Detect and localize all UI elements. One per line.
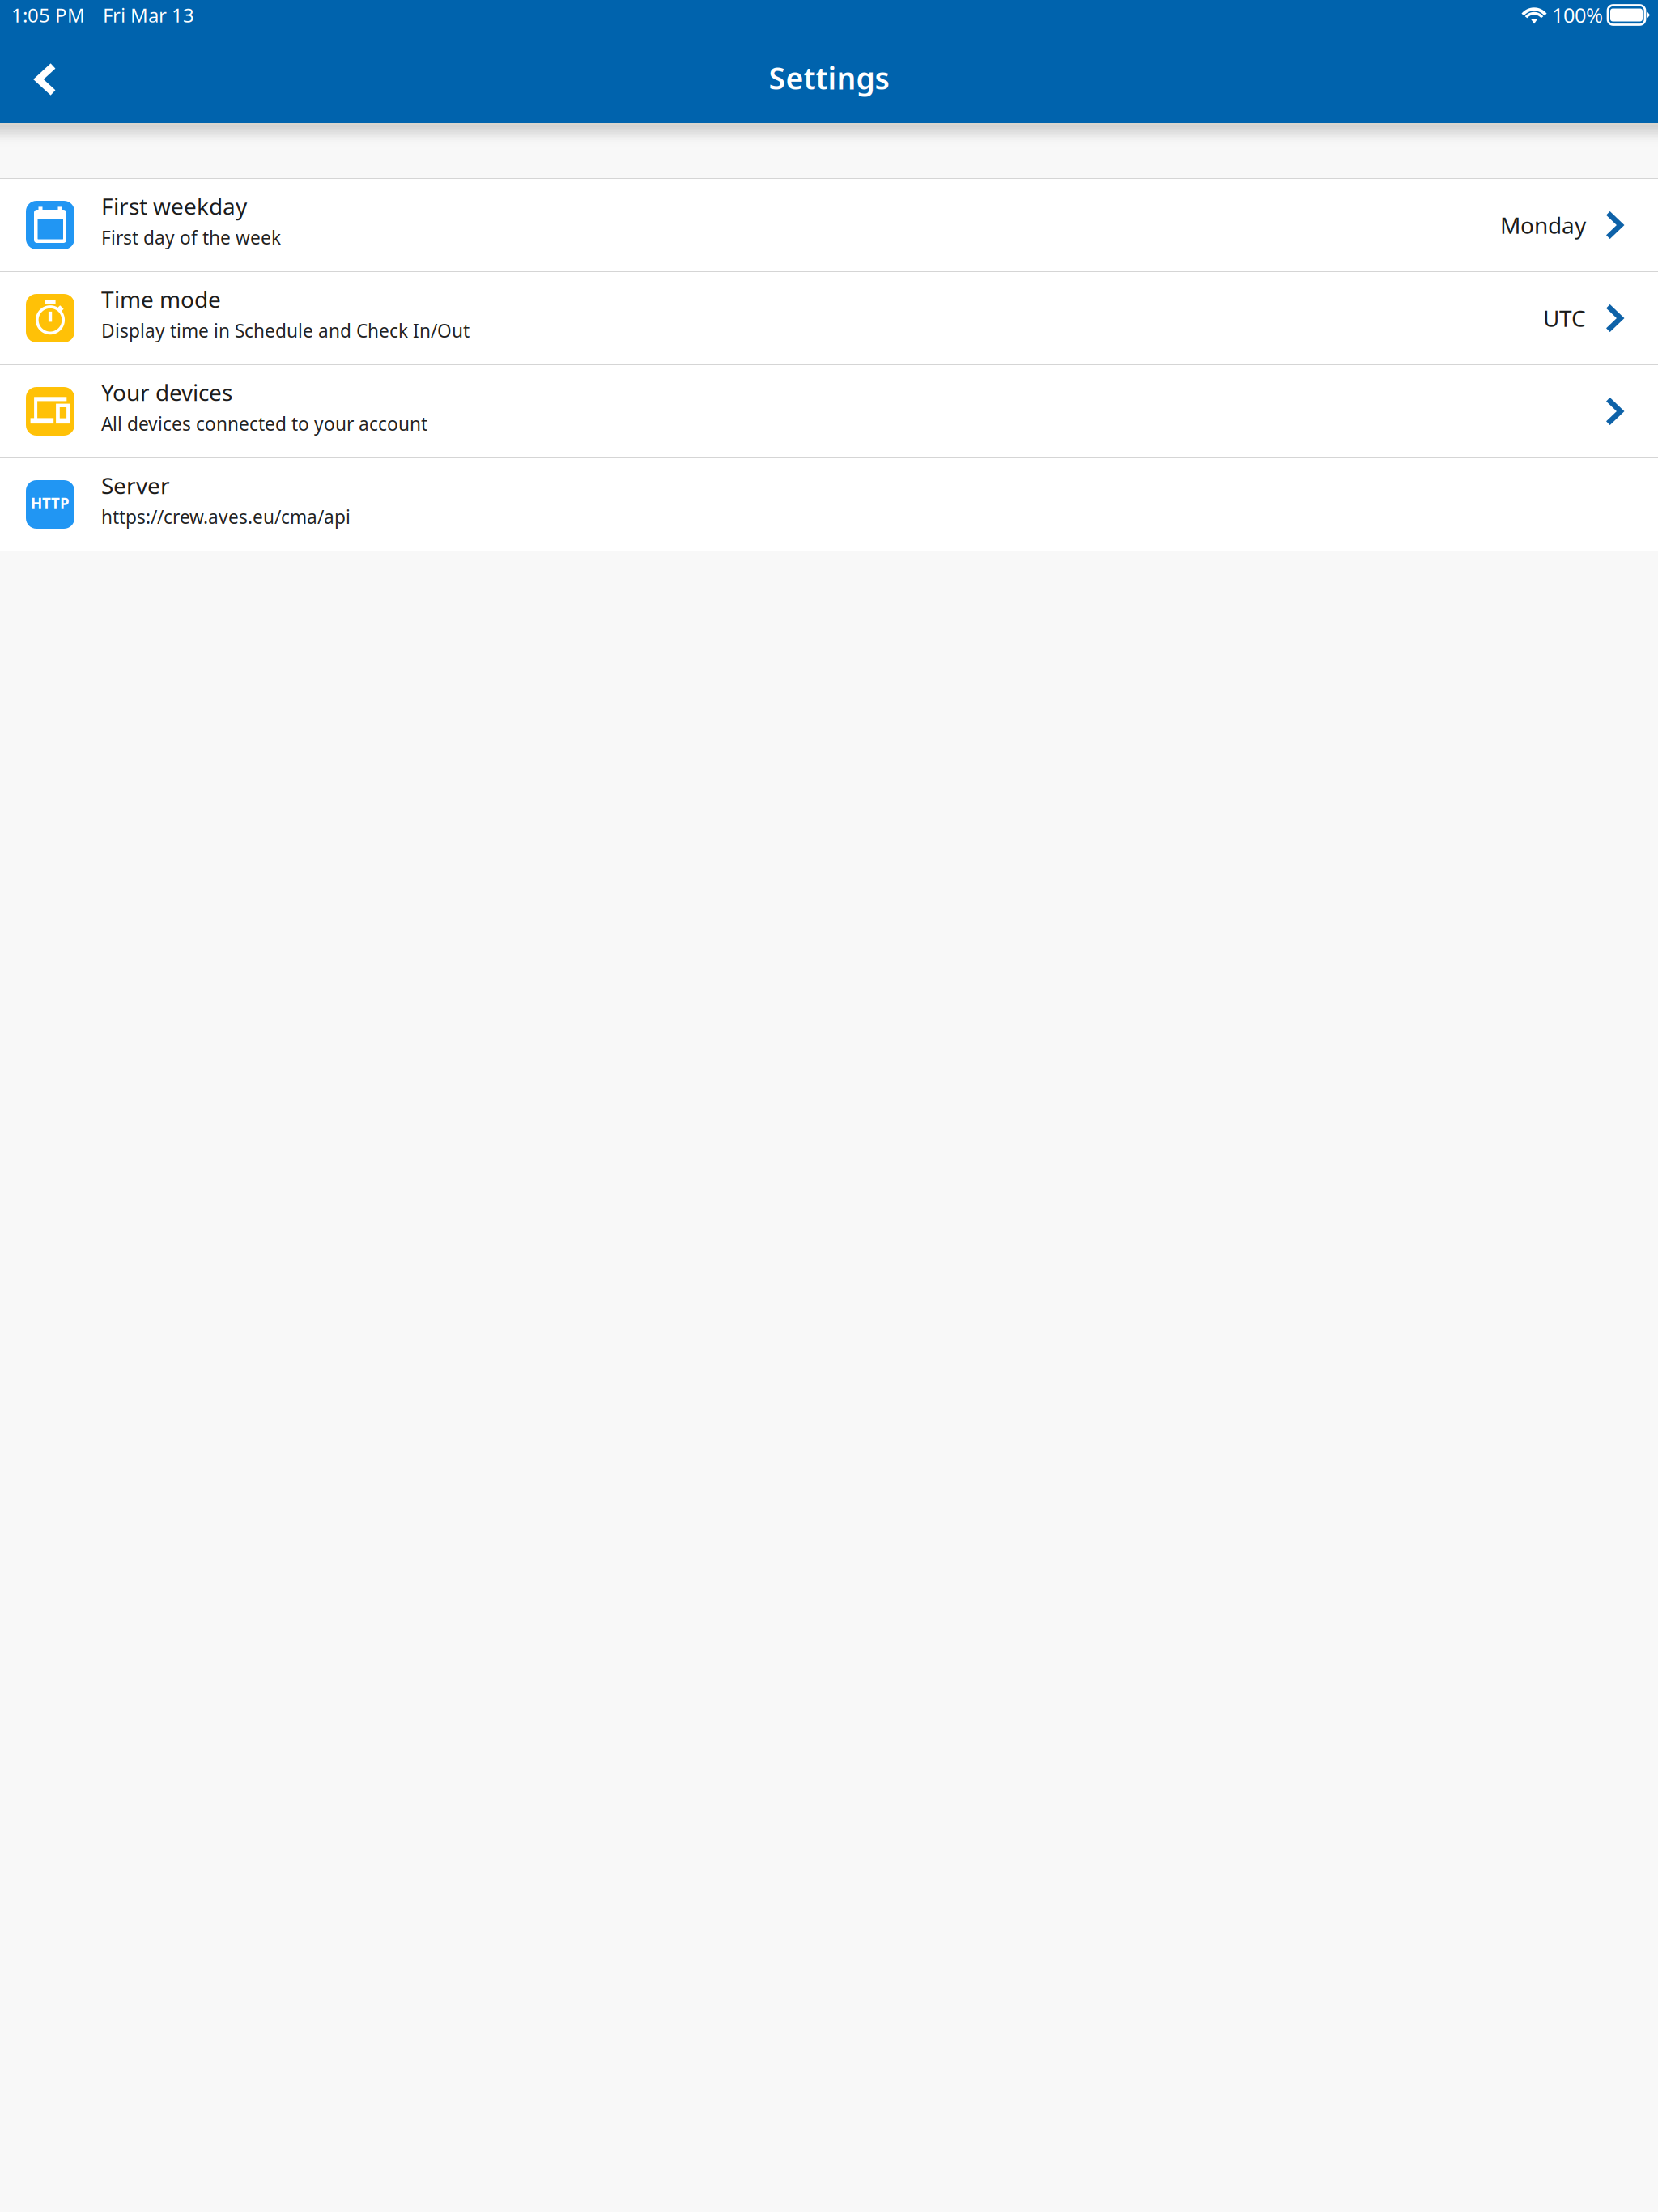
staticText: First day of the week	[101, 225, 281, 249]
staticText: Settings	[769, 58, 889, 98]
staticText: All devices connected to your account	[101, 411, 427, 436]
button[interactable]: Your devices	[0, 365, 1658, 458]
staticText: UTC	[1543, 303, 1586, 333]
staticText: Server	[101, 470, 170, 500]
staticText: Monday	[1500, 210, 1586, 240]
staticText: First weekday	[101, 191, 247, 221]
staticText: HTTP	[31, 493, 70, 513]
staticText: Time mode	[101, 284, 221, 314]
staticText: https://crew.aves.eu/cma/api	[101, 504, 351, 529]
staticText: 100%	[1552, 1, 1603, 29]
button[interactable]: Time mode	[0, 272, 1658, 365]
staticText: 1:05 PM	[11, 2, 85, 28]
button[interactable]: HTTP	[0, 458, 1658, 551]
button[interactable]: Back	[0, 40, 76, 119]
button[interactable]: First weekday	[0, 179, 1658, 272]
staticText: Display time in Schedule and Check In/Ou…	[101, 318, 470, 343]
staticText: Your devices	[101, 377, 232, 407]
staticText: Fri Mar 13	[103, 2, 194, 28]
